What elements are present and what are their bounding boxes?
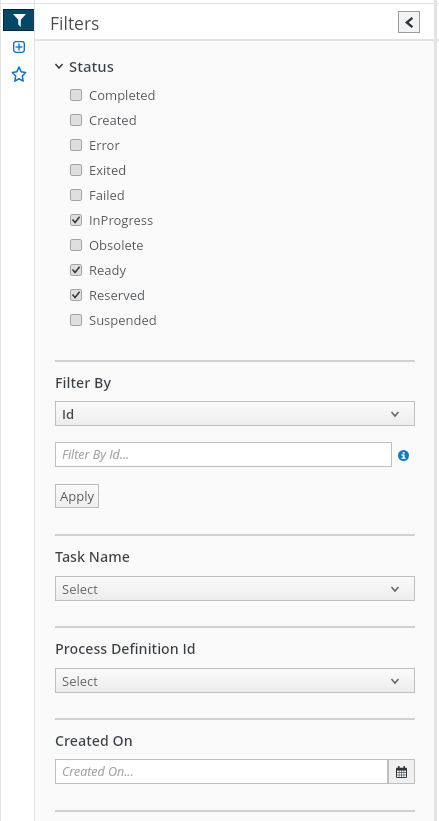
button[interactable]: Failed — [62, 185, 232, 205]
button[interactable]: Favorites — [9, 64, 29, 84]
button[interactable]: Select — [55, 576, 415, 601]
staticText: Created On... — [62, 763, 134, 780]
button[interactable]: Ready — [62, 260, 232, 280]
button[interactable]: Completed — [62, 85, 232, 105]
staticText: Completed — [89, 86, 156, 104]
button[interactable]: Filter By Id... — [55, 442, 392, 467]
staticText: Exited — [89, 161, 127, 179]
staticText: Select — [62, 672, 98, 690]
button[interactable]: Created — [62, 110, 232, 130]
button[interactable]: Suspended — [62, 310, 232, 330]
staticText: Reserved — [89, 286, 145, 304]
staticText: Created — [89, 111, 137, 129]
staticText: Filter By Id... — [62, 446, 130, 463]
button[interactable]: Pick date — [388, 759, 415, 784]
staticText: Status — [69, 56, 114, 75]
staticText: Apply — [60, 487, 94, 505]
staticText: Failed — [89, 186, 125, 204]
staticText: Task Name — [55, 547, 130, 566]
button[interactable]: Obsolete — [62, 235, 232, 255]
button[interactable]: Apply — [55, 484, 99, 508]
button[interactable]: Filters — [3, 9, 35, 31]
staticText: Ready — [89, 261, 127, 279]
button[interactable]: Error — [62, 135, 232, 155]
staticText: Error — [89, 136, 120, 154]
staticText: Select — [62, 580, 98, 598]
button[interactable]: Collapse panel — [398, 11, 420, 33]
button[interactable]: Select — [55, 668, 415, 693]
button[interactable]: Created On... — [55, 759, 388, 784]
button[interactable]: Info — [398, 450, 409, 461]
button[interactable]: Reserved — [62, 285, 232, 305]
button[interactable]: Add — [9, 37, 29, 57]
staticText: Id — [62, 405, 75, 423]
staticText: Created On — [55, 731, 133, 750]
button[interactable]: InProgress — [62, 210, 232, 230]
button[interactable]: Id — [55, 401, 415, 426]
staticText: InProgress — [89, 211, 154, 229]
staticText: Filter By — [55, 373, 111, 392]
staticText: Process Definition Id — [55, 639, 196, 658]
staticText: Suspended — [89, 311, 157, 329]
button[interactable]: Status — [55, 56, 115, 75]
button[interactable]: Exited — [62, 160, 232, 180]
staticText: Filters — [50, 11, 100, 35]
staticText: Obsolete — [89, 236, 144, 254]
